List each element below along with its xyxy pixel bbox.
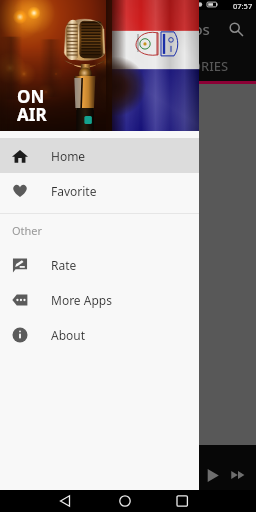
button[interactable]: Rate (0, 247, 199, 282)
staticText: Rate (51, 257, 77, 273)
staticText: Favorite (51, 183, 97, 199)
button[interactable]: About (0, 317, 199, 352)
staticText: About (51, 327, 86, 343)
button[interactable]: Home (0, 138, 199, 173)
staticText: AIR (17, 103, 47, 126)
button[interactable]: Play (201, 464, 223, 486)
staticText: ON (17, 85, 45, 108)
button[interactable]: Favorite (0, 173, 199, 208)
staticText: More Apps (51, 292, 112, 308)
staticText: Home (51, 148, 86, 164)
staticText: 07:57 (233, 1, 253, 10)
staticText: Radios (162, 19, 210, 39)
button[interactable]: More Apps (0, 282, 199, 317)
staticText: Other (12, 223, 43, 238)
button[interactable]: Next (227, 464, 249, 486)
staticText: CATEGORIES (151, 57, 229, 75)
button[interactable]: Search (224, 17, 248, 41)
